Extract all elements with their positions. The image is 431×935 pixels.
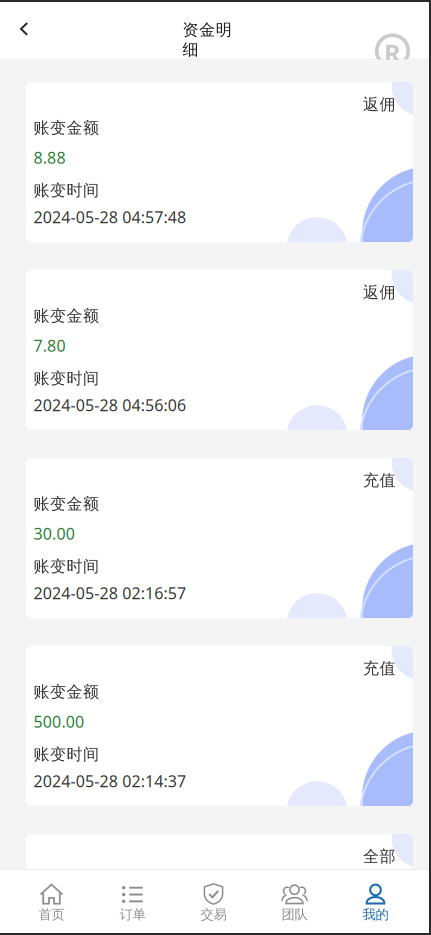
staticText: 充值 xyxy=(363,471,395,490)
staticText: 账变时间 xyxy=(33,369,99,388)
button[interactable]: 充值 xyxy=(26,458,413,618)
staticText: 账变金额 xyxy=(33,306,99,326)
button[interactable]: 团队 xyxy=(254,871,335,935)
button[interactable]: 充值 xyxy=(26,646,413,806)
staticText: 30.00 xyxy=(33,523,75,544)
staticText: 首页 xyxy=(38,906,64,923)
staticText: 7.80 xyxy=(33,335,65,356)
staticText: 返佣 xyxy=(363,283,395,302)
staticText: 团队 xyxy=(281,906,307,923)
staticText: 账变时间 xyxy=(33,557,99,576)
staticText: 我的 xyxy=(362,906,388,923)
staticText: 账变时间 xyxy=(33,181,99,200)
button[interactable]: 订单 xyxy=(92,871,173,935)
button[interactable]: 返佣 xyxy=(26,270,413,430)
button[interactable]: 首页 xyxy=(11,871,92,935)
button[interactable]: 全部 xyxy=(26,834,413,935)
staticText: 账变金额 xyxy=(33,118,99,138)
staticText: 返佣 xyxy=(363,95,395,114)
staticText: R xyxy=(384,36,401,70)
staticText: 订单 xyxy=(119,906,145,923)
staticText: 账变金额 xyxy=(33,494,99,514)
staticText: 2024-05-28 02:16:57 xyxy=(33,582,186,604)
staticText: 交易 xyxy=(200,906,226,923)
button[interactable]: Back xyxy=(2,7,46,51)
staticText: 2024-05-28 02:14:37 xyxy=(33,770,186,792)
button[interactable]: 我的 xyxy=(335,871,416,935)
staticText: 账变金额 xyxy=(33,682,99,702)
staticText: 2024-05-28 04:56:06 xyxy=(33,394,186,416)
staticText: 账变时间 xyxy=(33,745,99,764)
staticText: 资金明细 xyxy=(182,20,248,40)
staticText: 500.00 xyxy=(33,711,84,732)
staticText: 充值 xyxy=(363,659,395,678)
staticText: 全部 xyxy=(363,847,395,866)
staticText: 账变金额 xyxy=(33,870,99,890)
button[interactable]: 返佣 xyxy=(26,82,413,242)
staticText: 8.88 xyxy=(33,147,65,168)
button[interactable]: 交易 xyxy=(173,871,254,935)
staticText: 100.00 xyxy=(33,899,84,920)
staticText: 2024-05-28 04:57:48 xyxy=(33,206,186,228)
